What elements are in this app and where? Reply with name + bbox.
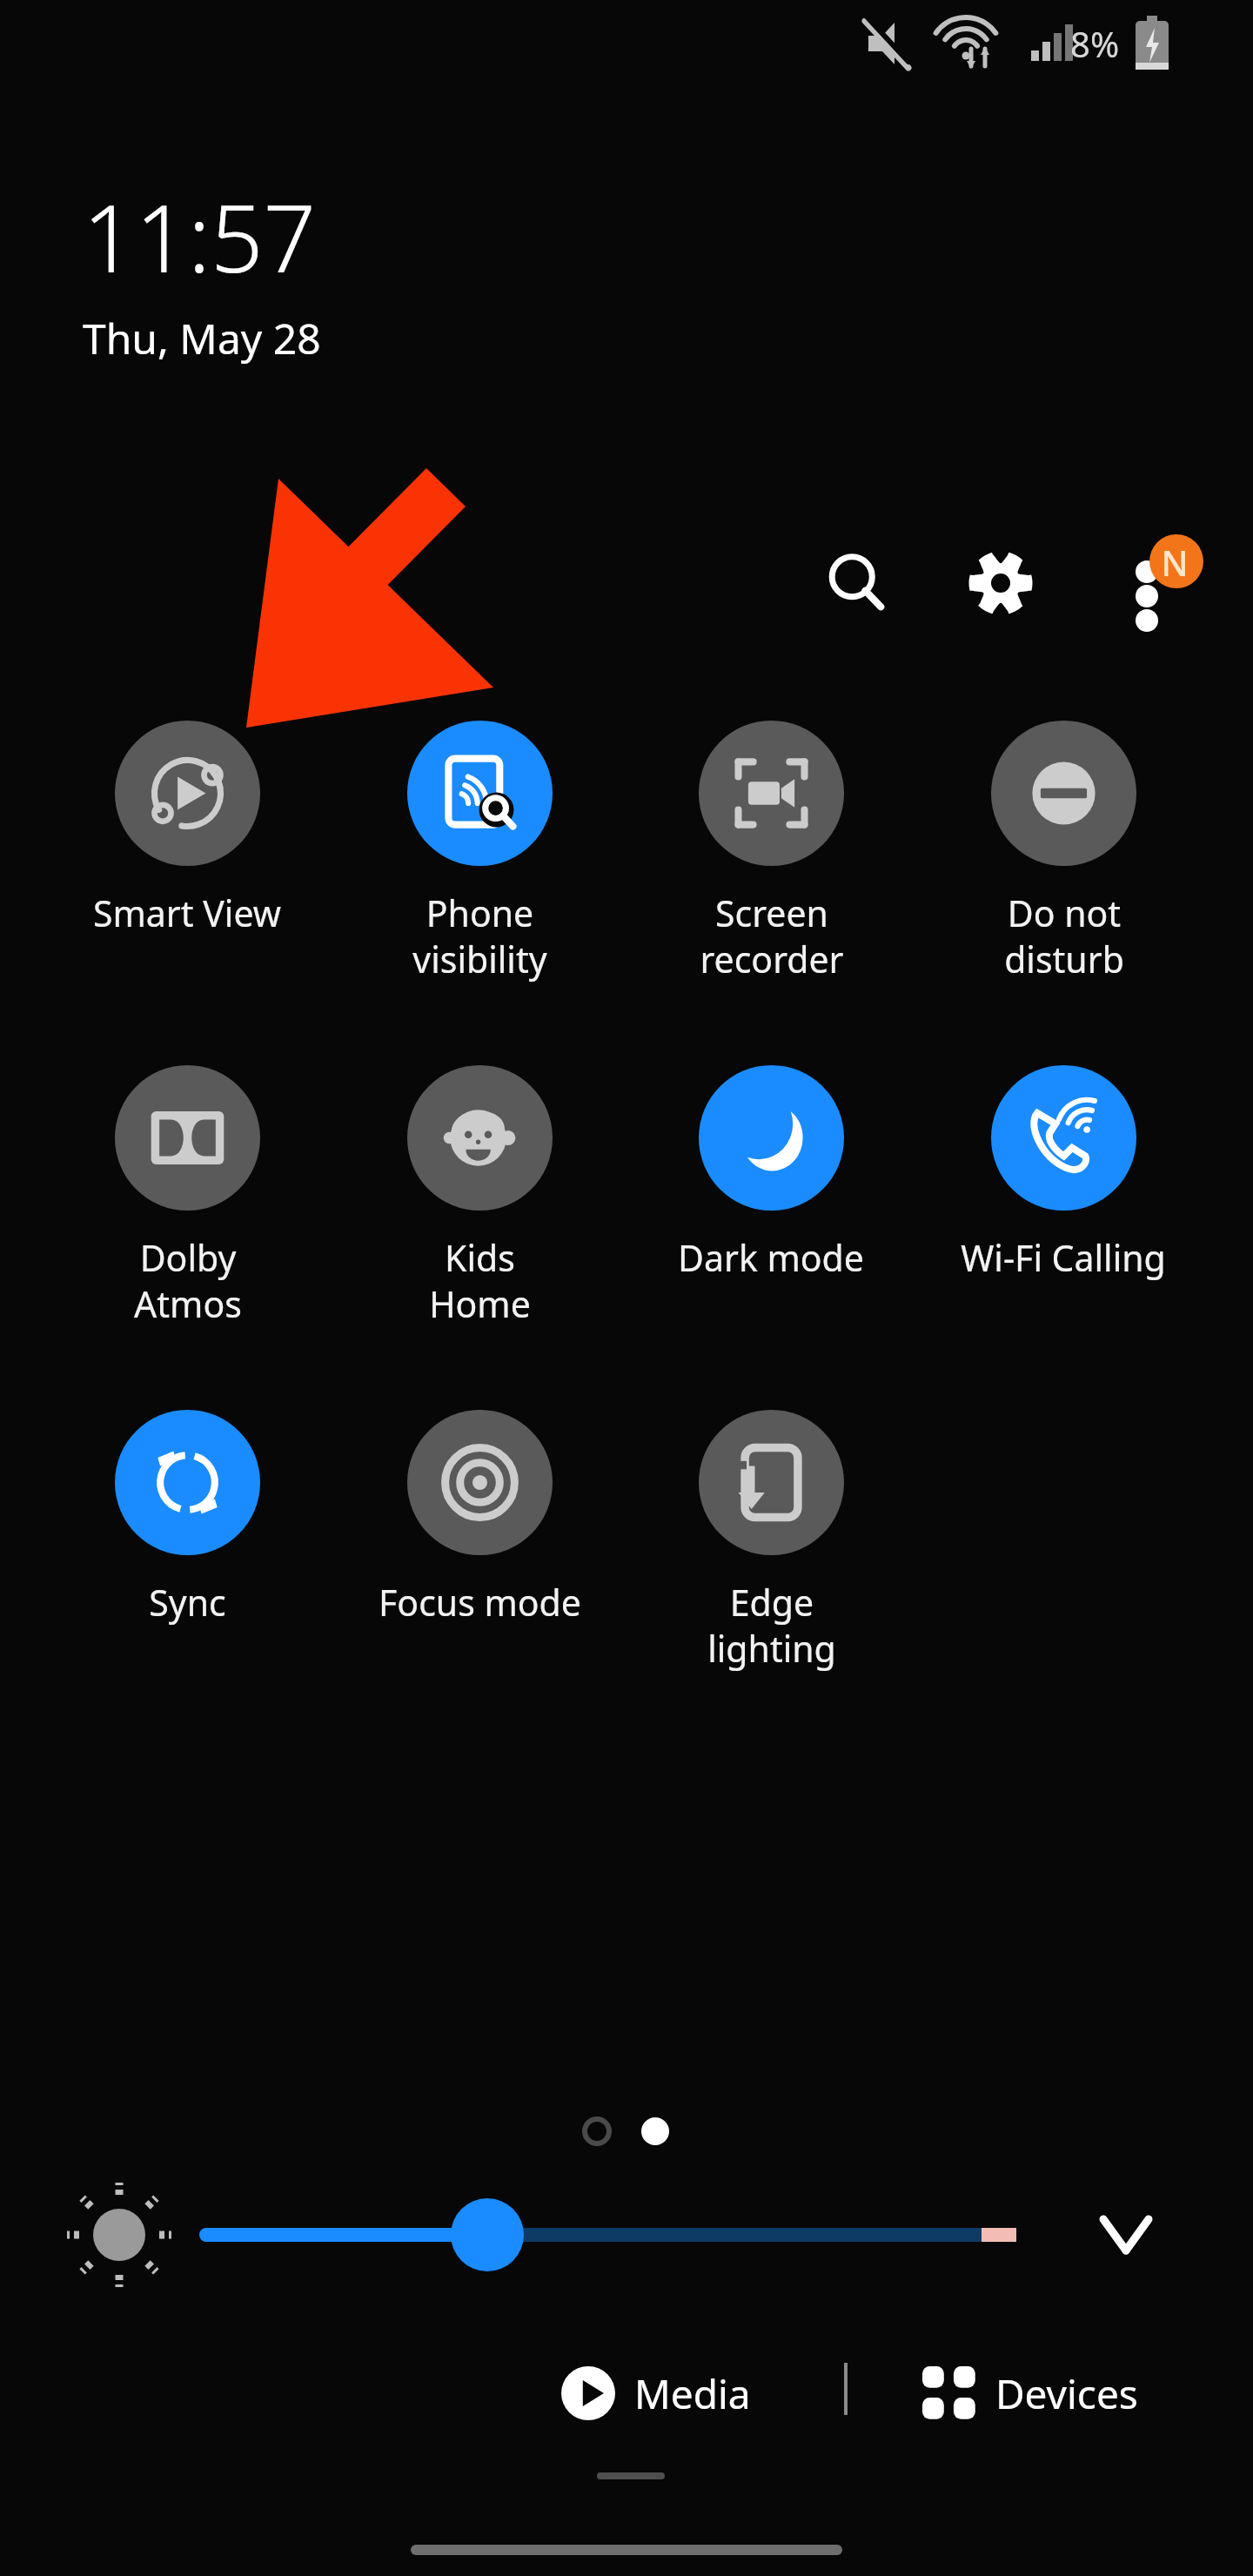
staticText: Kids Home	[429, 1233, 531, 1328]
button[interactable]: Dolby Atmos	[41, 1065, 333, 1335]
button[interactable]: Phone visibility	[333, 721, 626, 990]
staticText: Wi-Fi Calling	[961, 1233, 1166, 1282]
button[interactable]: More options	[1105, 522, 1218, 635]
staticText: Screen recorder	[700, 889, 844, 983]
button[interactable]: Media	[561, 2350, 751, 2437]
staticText: Do not disturb	[1004, 889, 1124, 983]
staticText: Focus mode	[379, 1578, 581, 1627]
staticText: 8%	[1070, 20, 1120, 67]
button[interactable]: Smart View	[41, 721, 333, 990]
staticText: Edge lighting	[707, 1578, 836, 1673]
button[interactable]: Expand brightness settings	[1079, 2189, 1175, 2284]
button[interactable]: Settings	[953, 535, 1049, 631]
staticText: Thu, May 28	[83, 310, 321, 366]
button[interactable]: Devices	[922, 2350, 1138, 2437]
button[interactable]: Wi-Fi Calling	[917, 1065, 1209, 1335]
button[interactable]: Edge lighting	[625, 1410, 917, 1680]
staticText: Dark mode	[678, 1233, 864, 1282]
button[interactable]: Dark mode	[625, 1065, 917, 1335]
staticText: N	[1161, 539, 1189, 586]
staticText: Sync	[149, 1578, 226, 1627]
button[interactable]: Brightness slider	[174, 2193, 1044, 2280]
button[interactable]: Sync	[41, 1410, 333, 1680]
button[interactable]: Screen recorder	[625, 721, 917, 990]
button[interactable]: Focus mode	[333, 1410, 626, 1680]
staticText: Smart View	[93, 889, 281, 937]
button[interactable]: Search	[809, 535, 905, 631]
button[interactable]: Do not disturb	[917, 721, 1209, 990]
staticText: Devices	[995, 2366, 1138, 2421]
staticText: Phone visibility	[412, 889, 547, 983]
staticText: Dolby Atmos	[134, 1233, 242, 1328]
staticText: 11:57	[83, 174, 316, 299]
button[interactable]: Kids Home	[333, 1065, 626, 1335]
staticText: Media	[634, 2366, 751, 2421]
